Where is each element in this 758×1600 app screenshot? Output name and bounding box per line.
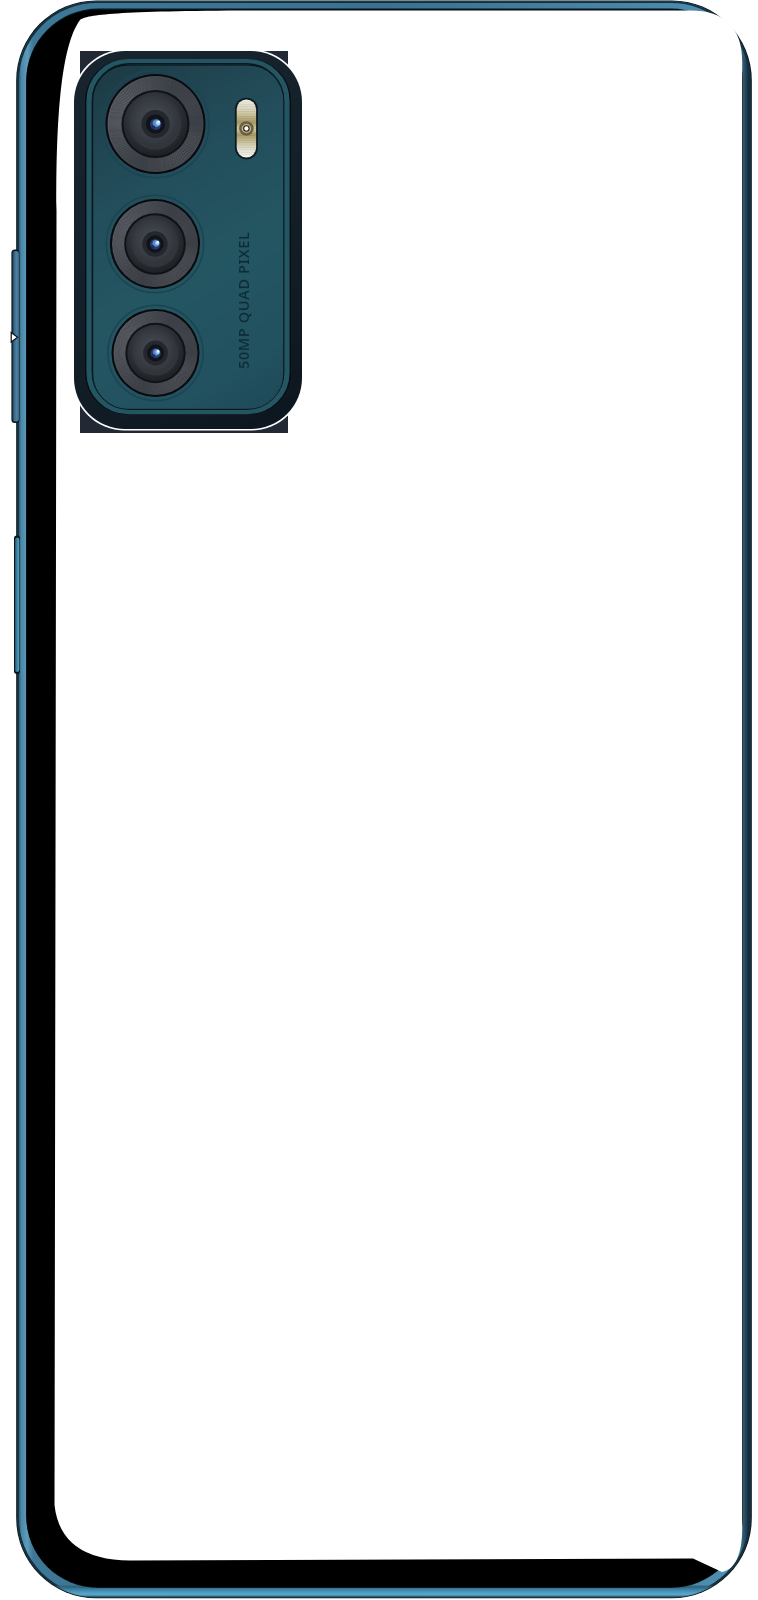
button[interactable]: Macro camera lens [111,309,200,398]
button[interactable]: LED flash [236,99,257,158]
button[interactable]: Volume rocker [11,249,20,423]
button[interactable]: Ultra-wide camera lens [110,199,200,289]
button[interactable]: Power button [14,535,21,674]
button[interactable]: Main 50MP camera lens [105,74,206,175]
button[interactable]: Camera module, 50MP quad pixel [74,51,302,429]
